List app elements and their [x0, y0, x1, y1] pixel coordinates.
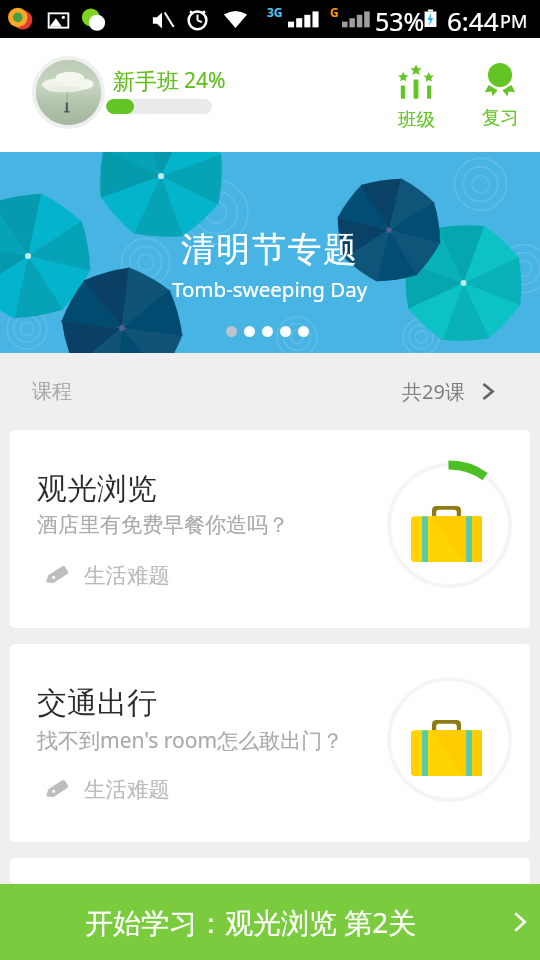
staticText: PM	[500, 9, 528, 34]
button[interactable]: 观光浏览	[10, 430, 530, 628]
staticText: 交通出行	[37, 684, 157, 722]
staticText: 6:44	[447, 3, 499, 38]
staticText: 复习	[482, 106, 519, 129]
staticText: 班级	[398, 108, 435, 131]
staticText: 生活难题	[84, 562, 170, 589]
staticText: 共29课	[402, 378, 465, 405]
button[interactable]: 开始学习：观光浏览 第2关	[0, 884, 540, 960]
staticText: 课程	[32, 379, 72, 404]
staticText: 新手班	[113, 68, 179, 96]
staticText: G	[330, 4, 339, 20]
button[interactable]: 清明节专题	[0, 152, 540, 353]
staticText: 清明节专题	[181, 228, 359, 271]
button[interactable]: 班级	[384, 65, 448, 131]
button[interactable]	[36, 60, 101, 125]
button[interactable]: 共29课	[402, 378, 540, 405]
staticText: 生活难题	[84, 776, 170, 803]
staticText: 观光浏览	[37, 470, 157, 508]
staticText: 53%	[375, 4, 425, 38]
staticText: 找不到men's room怎么敢出门？	[37, 726, 344, 755]
button[interactable]: 复习	[468, 63, 532, 129]
button[interactable]: 交通出行	[10, 644, 530, 842]
other: Go	[512, 911, 528, 933]
staticText: Tomb-sweeping Day	[172, 275, 368, 303]
staticText: 24%	[184, 66, 226, 95]
staticText: 开始学习：观光浏览 第2关	[85, 903, 417, 941]
staticText: 酒店里有免费早餐你造吗？	[37, 512, 289, 538]
staticText: 3G	[267, 4, 283, 20]
